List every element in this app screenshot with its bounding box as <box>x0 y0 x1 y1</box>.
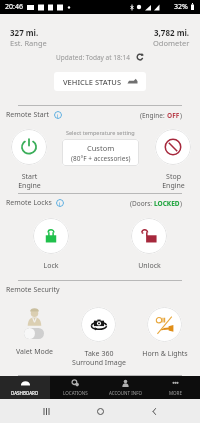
staticText: Remote Locks <box>6 198 52 208</box>
button[interactable]: Unlock <box>131 218 167 254</box>
staticText: DASHBOARD <box>11 390 39 396</box>
staticText: 327 mi. <box>10 27 39 38</box>
staticText: Take 360 Surround Image <box>72 349 126 367</box>
button[interactable]: Info <box>54 111 62 119</box>
button[interactable]: Recent apps <box>38 403 54 419</box>
staticText: Stop Engine <box>162 172 185 190</box>
button[interactable]: Back <box>146 403 162 419</box>
staticText: Valet Mode <box>16 347 53 357</box>
staticText: (Doors: <box>130 199 154 208</box>
button[interactable]: Lock <box>33 218 69 254</box>
staticText: Odometer <box>153 38 190 48</box>
button[interactable]: Home <box>92 403 108 419</box>
staticText: 20:46 <box>5 2 23 12</box>
staticText: 32% <box>174 2 188 12</box>
button[interactable]: MORE <box>150 376 200 399</box>
button[interactable]: ACCOUNT INFO <box>100 376 150 399</box>
button[interactable]: DASHBOARD <box>0 376 50 399</box>
staticText: Horn & Lights <box>142 349 188 359</box>
button[interactable]: VEHICLE STATUS <box>54 72 146 91</box>
button[interactable]: Horn and Lights <box>147 307 182 342</box>
button[interactable]: Start Engine <box>11 129 47 165</box>
staticText: Custom <box>87 143 115 153</box>
button[interactable]: Stop Engine <box>155 129 191 165</box>
staticText: Remote Security <box>6 285 60 295</box>
staticText: Est. Range <box>10 38 47 48</box>
staticText: ) <box>180 111 182 120</box>
button[interactable]: Custom <box>62 139 139 166</box>
staticText: 3,782 mi. <box>154 27 190 38</box>
staticText: Lock <box>43 261 59 271</box>
staticText: (80°F + accessories) <box>71 154 131 163</box>
staticText: ACCOUNT INFO <box>109 390 142 396</box>
staticText: MORE <box>169 390 182 396</box>
staticText: ) <box>180 199 182 208</box>
staticText: (Engine: <box>140 111 167 120</box>
staticText: i <box>57 112 59 119</box>
staticText: LOCATIONS <box>63 390 88 396</box>
staticText: VEHICLE STATUS <box>63 77 122 87</box>
staticText: OFF <box>167 111 180 120</box>
button[interactable]: Take 360 Surround Image <box>81 307 116 342</box>
staticText: Updated: Today at 18:14 <box>56 53 130 62</box>
staticText: Unlock <box>138 261 161 271</box>
staticText: Start Engine <box>18 172 41 190</box>
staticText: Select temperature setting <box>66 129 135 136</box>
button[interactable]: Refresh <box>135 52 145 62</box>
button[interactable]: LOCATIONS <box>50 376 100 399</box>
staticText: LOCKED <box>154 199 180 208</box>
staticText: Remote Start <box>6 110 50 120</box>
staticText: i <box>59 200 61 207</box>
button[interactable]: Info <box>56 199 64 207</box>
button[interactable]: Valet Mode <box>0 307 68 357</box>
